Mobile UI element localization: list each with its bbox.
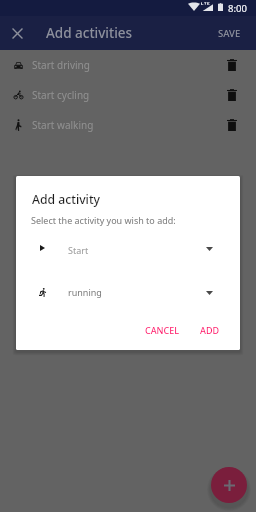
button[interactable]: Delete [217, 50, 247, 80]
staticText: running [68, 286, 102, 298]
button[interactable]: running [16, 284, 240, 300]
staticText: ADD [200, 324, 220, 336]
button[interactable]: Delete [217, 80, 247, 110]
staticText: Select the activity you wish to add: [31, 214, 176, 226]
staticText: Start [68, 244, 89, 256]
button[interactable]: Start driving [0, 50, 256, 80]
button[interactable]: Close [0, 16, 34, 50]
staticText: Start walking [32, 118, 94, 132]
staticText: Add activities [46, 24, 133, 42]
staticText: CANCEL [145, 324, 180, 336]
button[interactable]: Start [16, 240, 240, 256]
staticText: SAVE [218, 27, 241, 40]
button[interactable]: Add activity [211, 467, 247, 503]
button[interactable]: CANCEL [140, 319, 185, 341]
staticText: Start cycling [32, 88, 90, 102]
button[interactable]: ADD [195, 319, 225, 341]
button[interactable]: Start cycling [0, 80, 256, 110]
staticText: Add activity [32, 191, 100, 208]
staticText: 8:00 [228, 2, 247, 15]
button[interactable]: Delete [217, 110, 247, 140]
staticText: Start driving [32, 58, 90, 72]
button[interactable]: Start walking [0, 110, 256, 140]
button[interactable]: SAVE [209, 19, 256, 48]
